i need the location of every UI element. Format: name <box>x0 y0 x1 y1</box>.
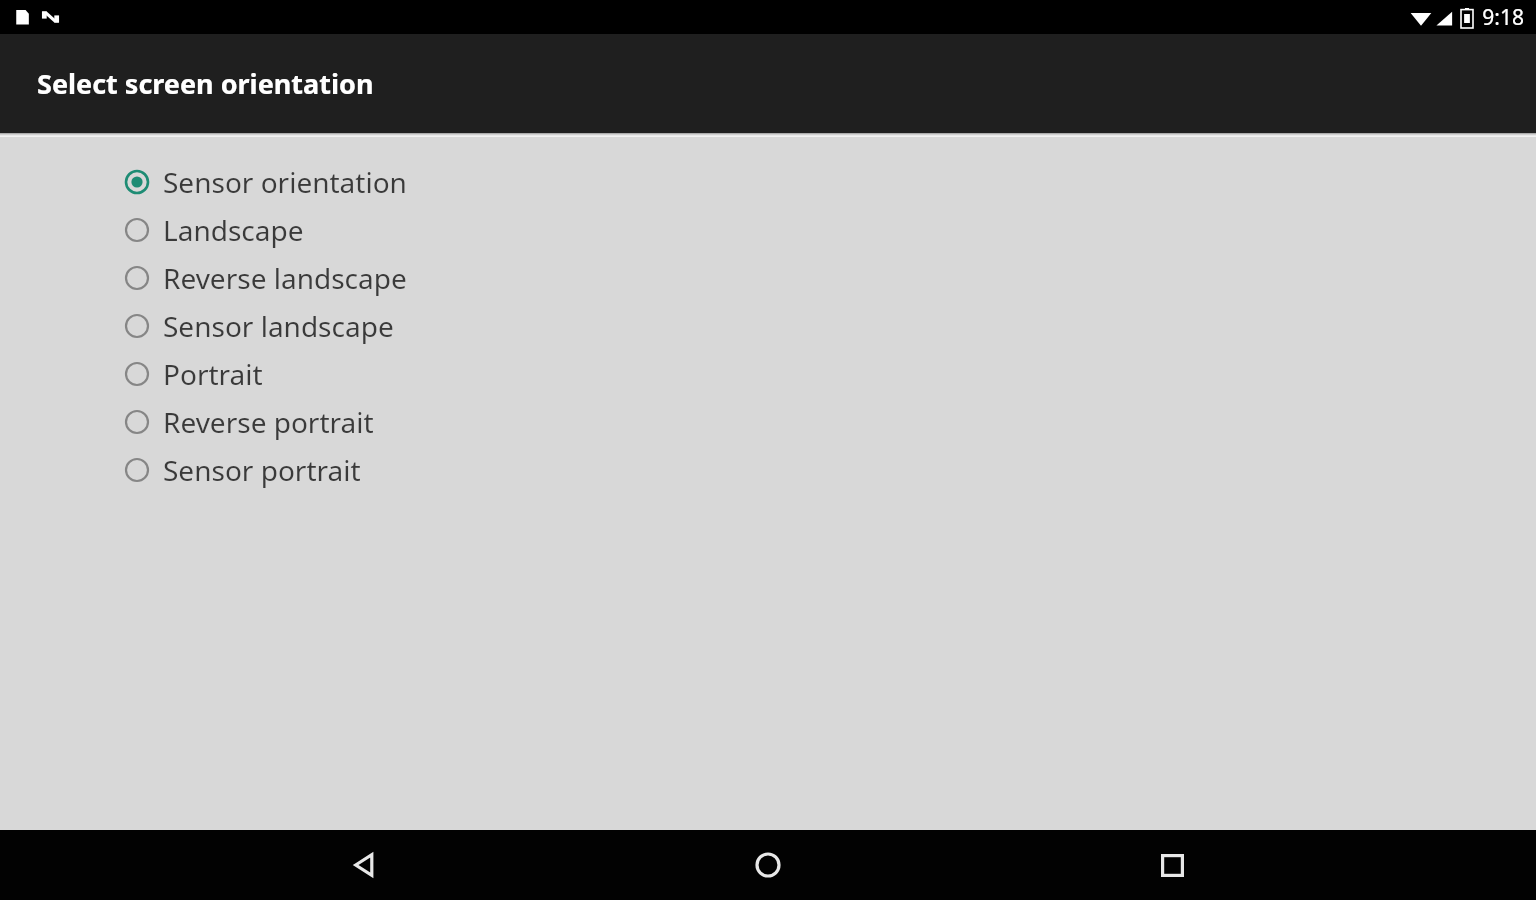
button[interactable]: Back <box>324 830 404 900</box>
staticText: Select screen orientation <box>37 65 374 102</box>
staticText: Reverse landscape <box>163 259 407 297</box>
staticText: 9:18 <box>1480 3 1524 32</box>
staticText: Portrait <box>163 355 263 393</box>
staticText: Sensor portrait <box>163 451 361 489</box>
staticText: Landscape <box>163 211 304 249</box>
staticText: Reverse portrait <box>163 403 374 441</box>
button[interactable]: Reverse landscape <box>0 254 1536 302</box>
staticText: Sensor orientation <box>163 163 407 201</box>
button[interactable]: Home <box>728 830 808 900</box>
button[interactable]: Recent apps <box>1132 830 1212 900</box>
button[interactable]: Sensor portrait <box>0 446 1536 494</box>
staticText: Sensor landscape <box>163 307 394 345</box>
button[interactable]: Portrait <box>0 350 1536 398</box>
button[interactable]: Sensor orientation <box>0 158 1536 206</box>
button[interactable]: Reverse portrait <box>0 398 1536 446</box>
button[interactable]: Landscape <box>0 206 1536 254</box>
button[interactable]: Sensor landscape <box>0 302 1536 350</box>
